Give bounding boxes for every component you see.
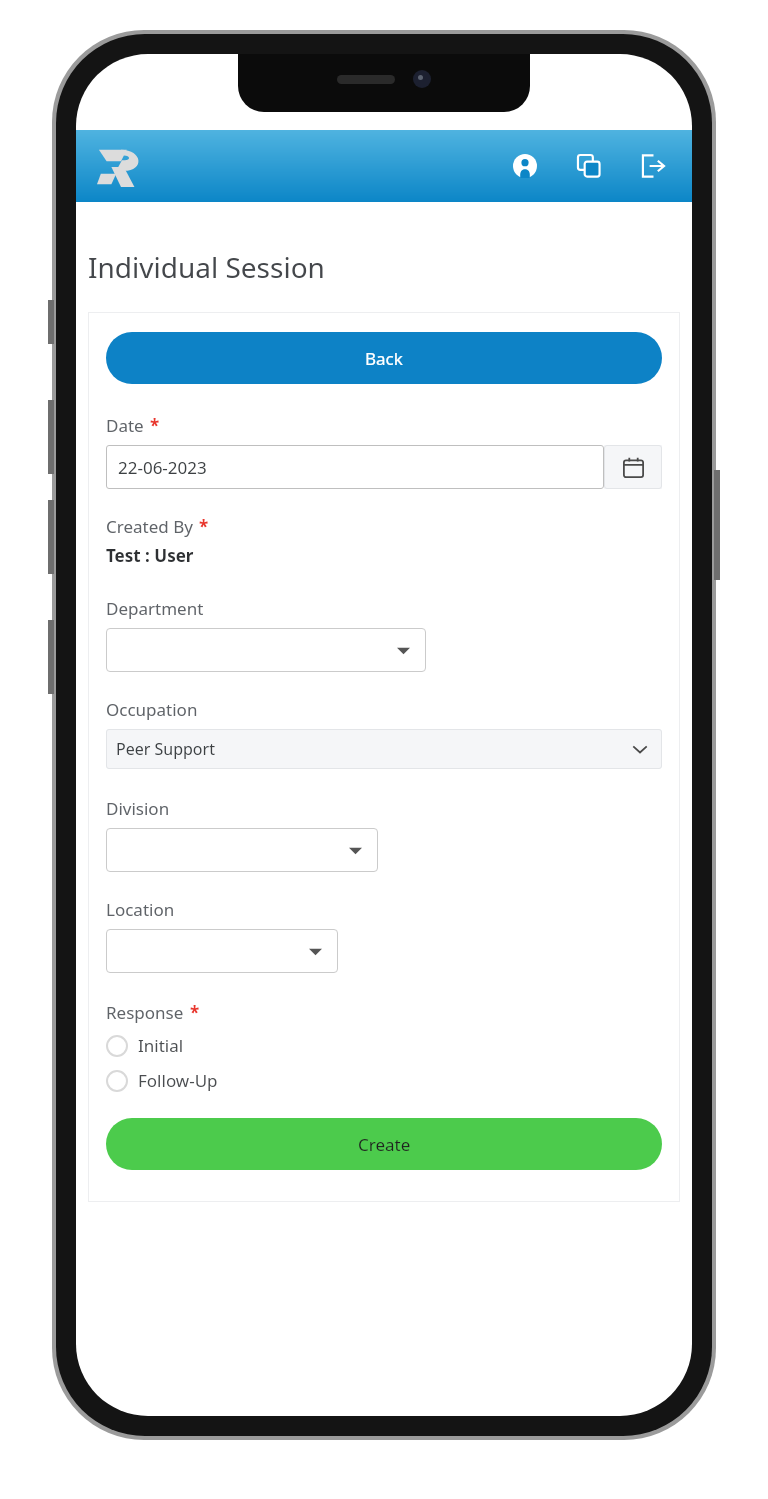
staticText: Test : User bbox=[106, 544, 194, 567]
button[interactable]: Select bbox=[106, 929, 338, 973]
button[interactable]: Account bbox=[502, 143, 548, 189]
button[interactable]: Create bbox=[106, 1118, 662, 1170]
button[interactable]: Log out bbox=[630, 143, 676, 189]
staticText: Department bbox=[106, 597, 204, 620]
staticText: Occupation bbox=[106, 698, 198, 721]
staticText: Individual Session bbox=[88, 248, 325, 286]
button[interactable]: Select bbox=[106, 628, 426, 672]
staticText: 22-06-2023 bbox=[118, 456, 207, 479]
staticText: * bbox=[150, 414, 160, 437]
staticText: Division bbox=[106, 797, 170, 820]
button[interactable]: Initial bbox=[106, 1030, 184, 1061]
staticText: Back bbox=[365, 347, 403, 370]
button[interactable]: Back bbox=[106, 332, 662, 384]
staticText: Initial bbox=[138, 1034, 184, 1057]
button[interactable]: Select bbox=[106, 828, 378, 872]
button[interactable]: Pick date bbox=[604, 445, 662, 489]
button[interactable]: Peer Support bbox=[106, 729, 662, 769]
staticText: Peer Support bbox=[116, 738, 215, 760]
button[interactable]: Home bbox=[92, 137, 150, 195]
staticText: Created By bbox=[106, 515, 193, 538]
staticText: Date bbox=[106, 414, 144, 437]
staticText: Follow-Up bbox=[138, 1069, 218, 1092]
button[interactable]: 22-06-2023 bbox=[106, 445, 604, 489]
button[interactable]: Follow-Up bbox=[106, 1065, 218, 1096]
staticText: * bbox=[190, 1001, 200, 1024]
staticText: Location bbox=[106, 898, 175, 921]
staticText: Response bbox=[106, 1001, 184, 1024]
button[interactable]: Copy bbox=[566, 143, 612, 189]
staticText: Create bbox=[358, 1133, 411, 1156]
staticText: * bbox=[199, 515, 209, 538]
